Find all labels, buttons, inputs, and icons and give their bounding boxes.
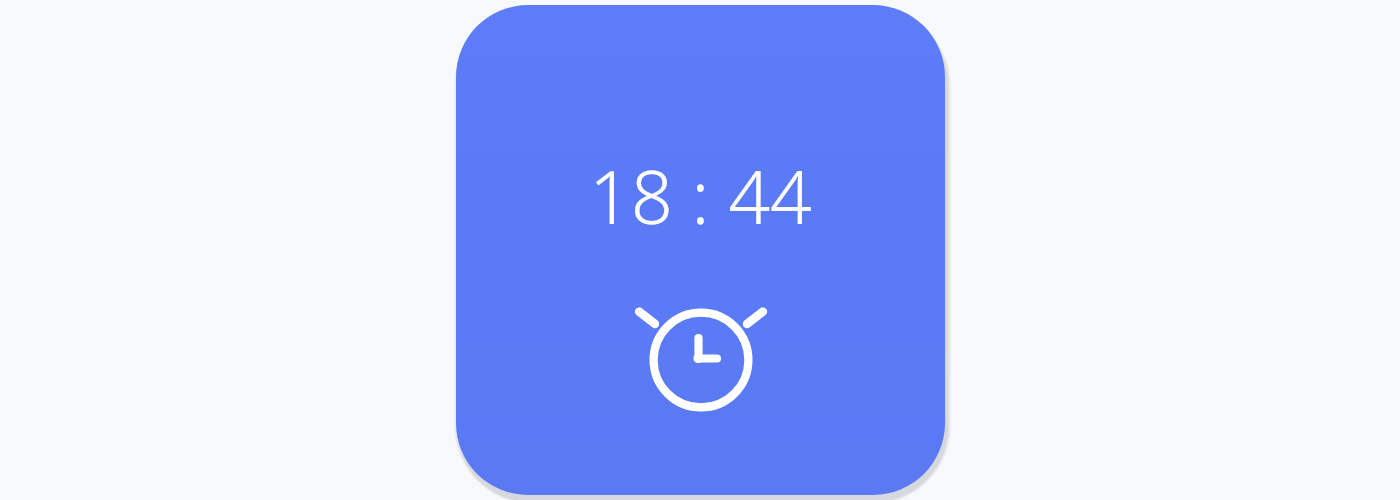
button[interactable]: Alarm [636, 296, 766, 426]
staticText: 18 : 44 [589, 146, 812, 245]
button[interactable]: 18 : 44 [456, 5, 945, 495]
